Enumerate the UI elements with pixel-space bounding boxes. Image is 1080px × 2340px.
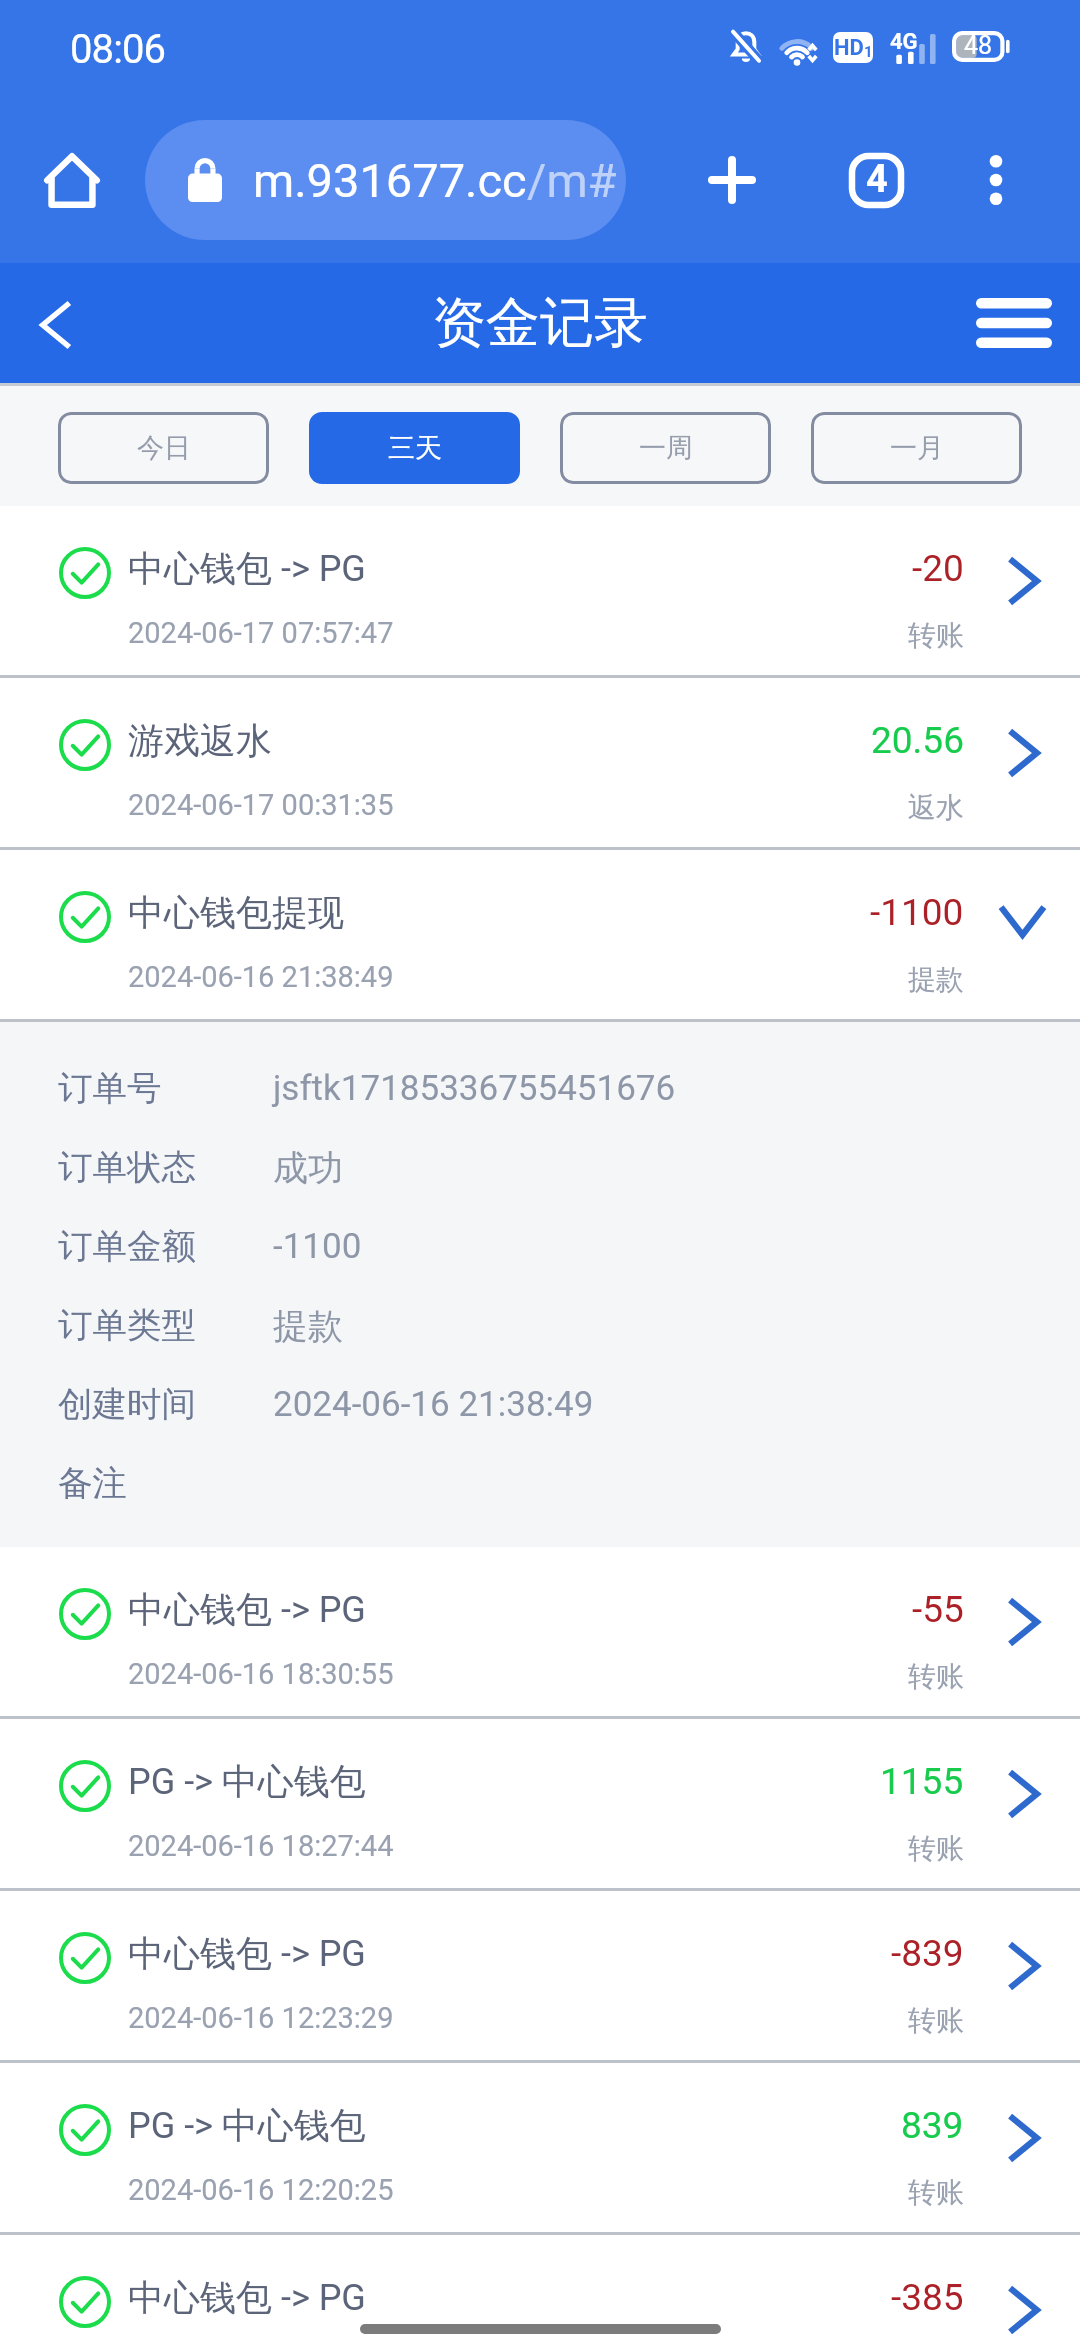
button[interactable]: 中心钱包 -> PG (0, 506, 1080, 675)
button[interactable]: 游戏返水 (0, 678, 1080, 847)
staticText: 中心钱包 -> PG (128, 1931, 366, 1976)
staticText: 转账 (908, 2003, 964, 2038)
staticText: 一周 (639, 431, 693, 465)
staticText: 提款 (273, 1304, 343, 1348)
button[interactable]: PG -> 中心钱包 (0, 1719, 1080, 1888)
staticText: -1100 (870, 891, 964, 934)
staticText: 08:06 (70, 26, 166, 73)
staticText: 839 (901, 2104, 964, 2147)
staticText: 2024-06-16 21:38:49 (273, 1384, 594, 1425)
staticText: 4G (890, 29, 918, 55)
staticText: 48 (964, 31, 993, 60)
staticText: HD (834, 35, 864, 61)
button[interactable]: Search or type URL (145, 120, 626, 240)
button[interactable]: 中心钱包 -> PG (0, 1891, 1080, 2060)
staticText: -55 (912, 1588, 964, 1631)
button[interactable]: 今日 (58, 412, 269, 484)
staticText: 订单状态 (58, 1146, 196, 1189)
staticText: 转账 (908, 1659, 964, 1694)
staticText: -20 (912, 547, 964, 590)
staticText: 2024-06-16 12:23:29 (128, 2001, 394, 2035)
staticText: PG -> 中心钱包 (128, 1759, 366, 1804)
staticText: 创建时间 (58, 1383, 196, 1426)
staticText: 2024-06-17 00:31:35 (128, 788, 394, 822)
staticText: 一月 (890, 431, 944, 465)
staticText: 备注 (58, 1462, 127, 1505)
staticText: 订单号 (58, 1067, 162, 1110)
button[interactable]: New tab (678, 126, 786, 234)
staticText: 转账 (908, 1831, 964, 1866)
staticText: 中心钱包 -> PG (128, 1587, 366, 1632)
staticText: 转账 (908, 2175, 964, 2210)
staticText: 订单金额 (58, 1225, 196, 1268)
staticText: 返水 (908, 790, 964, 825)
button[interactable]: PG -> 中心钱包 (0, 2063, 1080, 2232)
button[interactable]: Menu (946, 263, 1080, 383)
staticText: 订单类型 (58, 1304, 196, 1347)
staticText: 2024-06-16 18:30:55 (128, 1657, 394, 1691)
staticText: 今日 (137, 431, 191, 465)
staticText: 1 (864, 43, 873, 61)
button[interactable]: 中心钱包 -> PG (0, 1547, 1080, 1716)
staticText: /m# (527, 153, 617, 208)
staticText: 三天 (388, 431, 442, 465)
staticText: -839 (891, 1932, 964, 1975)
staticText: PG -> 中心钱包 (128, 2103, 366, 2148)
staticText: 2024-06-17 07:57:47 (128, 616, 394, 650)
button[interactable]: Back (9, 263, 99, 383)
staticText: 1155 (880, 1760, 964, 1803)
staticText: 20.56 (871, 719, 964, 762)
staticText: 资金记录 (432, 289, 648, 357)
button[interactable]: 一周 (560, 412, 771, 484)
button[interactable]: 中心钱包 -> PG (0, 2235, 1080, 2340)
staticText: 中心钱包 -> PG (128, 546, 366, 591)
staticText: m.931677.cc (253, 153, 527, 208)
staticText: 中心钱包 -> PG (128, 2275, 366, 2320)
staticText: 2024-06-16 12:20:25 (128, 2173, 394, 2207)
staticText: 2024-06-16 18:27:44 (128, 1829, 394, 1863)
staticText: 4 (866, 157, 888, 202)
staticText: 游戏返水 (128, 718, 272, 763)
staticText: jsftk17185336755451676 (273, 1068, 676, 1109)
staticText: 2024-06-16 21:38:49 (128, 960, 394, 994)
button[interactable]: 一月 (811, 412, 1022, 484)
staticText: -1100 (273, 1226, 362, 1267)
button[interactable]: More options (942, 126, 1050, 234)
button[interactable]: Tabs: 4 open (822, 126, 930, 234)
button[interactable]: Home (18, 126, 126, 234)
staticText: 提款 (908, 962, 964, 997)
staticText: 中心钱包提现 (128, 890, 344, 935)
button[interactable]: 三天 (309, 412, 520, 484)
staticText: 成功 (273, 1146, 343, 1190)
staticText: -385 (891, 2276, 964, 2319)
staticText: 转账 (908, 618, 964, 653)
button[interactable]: 中心钱包提现 (0, 850, 1080, 1019)
